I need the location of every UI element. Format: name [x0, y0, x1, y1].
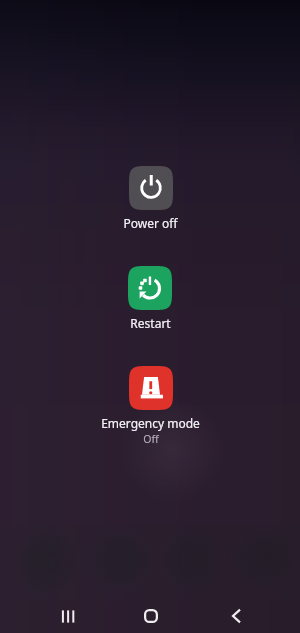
staticText: Emergency mode [101, 415, 200, 431]
button[interactable]: Recent apps [52, 601, 82, 631]
button[interactable]: Restart [128, 266, 172, 331]
staticText: Power off [123, 215, 178, 231]
staticText: Off [143, 432, 159, 446]
button[interactable]: Emergency mode [101, 366, 200, 446]
button[interactable]: Power off [123, 166, 178, 231]
button[interactable]: Home [136, 601, 166, 631]
staticText: Restart [130, 315, 171, 331]
button[interactable]: Back [221, 601, 251, 631]
